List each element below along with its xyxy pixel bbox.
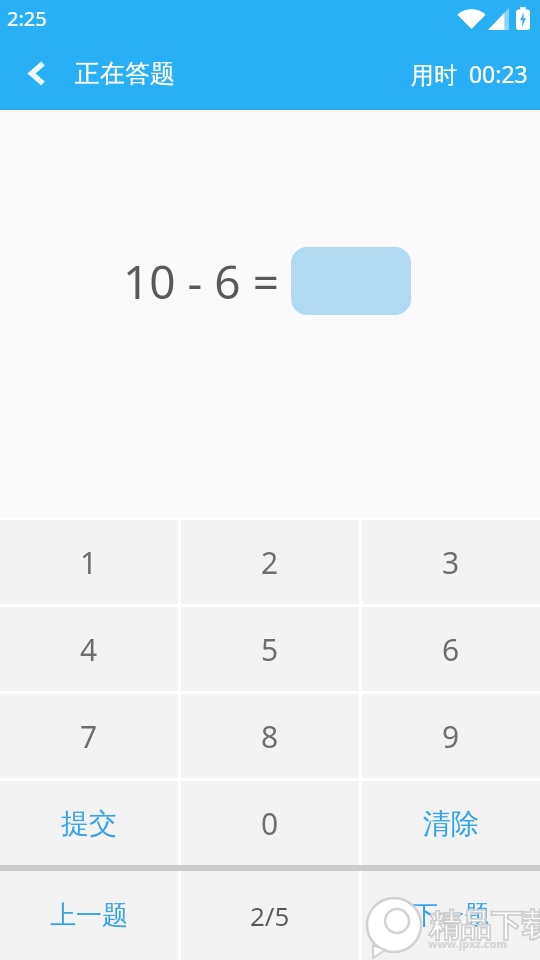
button[interactable]: 清除 (362, 781, 540, 865)
button[interactable]: 7 (0, 694, 178, 778)
button[interactable]: 提交 (0, 781, 178, 865)
staticText: 8 (261, 716, 279, 757)
button[interactable]: 9 (362, 694, 540, 778)
button[interactable]: 0 (181, 781, 359, 865)
staticText: www.jpxz.com (428, 936, 508, 951)
staticText: 5 (261, 629, 279, 670)
staticText: 清除 (423, 806, 479, 841)
staticText: 精品下载 (429, 906, 540, 945)
staticText: 7 (80, 716, 98, 757)
staticText: 10 - 6 = (123, 250, 279, 313)
staticText: 2/5 (250, 898, 290, 933)
staticText: 正在答题 (75, 58, 175, 89)
staticText: 用时 00:23 (411, 58, 528, 89)
staticText: 上一题 (50, 899, 128, 932)
staticText: 下一题 (412, 899, 490, 932)
staticText: 9 (442, 716, 460, 757)
button[interactable]: 3 (362, 520, 540, 604)
button[interactable]: 1 (0, 520, 178, 604)
button[interactable]: 2/5 (181, 871, 359, 960)
staticText: 0 (261, 803, 279, 844)
staticText: 2:25 (7, 5, 47, 32)
staticText: 4 (80, 629, 98, 670)
button[interactable]: 2 (181, 520, 359, 604)
button[interactable]: 4 (0, 607, 178, 691)
button[interactable]: 6 (362, 607, 540, 691)
staticText: 精品下载 (429, 906, 540, 945)
button[interactable]: 8 (181, 694, 359, 778)
staticText: 2 (261, 542, 279, 583)
button[interactable] (291, 247, 411, 315)
staticText: 3 (442, 542, 460, 583)
button[interactable]: 下一题 (362, 871, 540, 960)
button[interactable] (0, 37, 74, 110)
staticText: 6 (442, 629, 460, 670)
button[interactable]: 5 (181, 607, 359, 691)
staticText: 提交 (61, 806, 117, 841)
staticText: 1 (80, 542, 98, 583)
button[interactable]: 上一题 (0, 871, 178, 960)
